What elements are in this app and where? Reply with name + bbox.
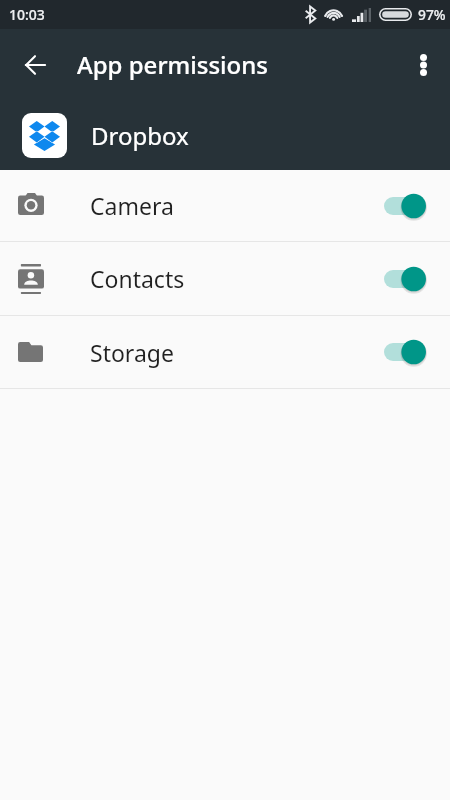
staticText: 10:03 bbox=[9, 5, 45, 24]
button[interactable]: Toggle permission bbox=[384, 191, 426, 221]
staticText: Contacts bbox=[90, 263, 185, 294]
button[interactable]: Back bbox=[11, 41, 59, 89]
button[interactable]: Storage bbox=[0, 316, 450, 388]
staticText: 97% bbox=[418, 5, 446, 24]
button[interactable]: Toggle permission bbox=[384, 337, 426, 367]
button[interactable]: Contacts bbox=[0, 242, 450, 315]
button[interactable]: Toggle permission bbox=[384, 264, 426, 294]
staticText: Camera bbox=[90, 190, 174, 221]
staticText: App permissions bbox=[77, 48, 268, 81]
staticText: Dropbox bbox=[91, 119, 189, 152]
button[interactable]: More options bbox=[399, 41, 447, 89]
staticText: Storage bbox=[90, 337, 174, 368]
button[interactable]: Camera bbox=[0, 170, 450, 241]
button[interactable]: Dropbox bbox=[0, 100, 450, 170]
